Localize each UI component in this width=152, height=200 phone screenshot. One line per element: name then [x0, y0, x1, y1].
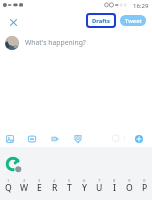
- button[interactable]: Add GIF: [24, 130, 40, 147]
- staticText: What's happening?: [25, 38, 86, 47]
- staticText: U: [96, 182, 103, 194]
- button[interactable]: Profile picture: [5, 36, 19, 50]
- button[interactable]: Add location: [70, 130, 86, 147]
- button[interactable]: 9: [122, 177, 137, 200]
- staticText: R: [52, 182, 58, 194]
- button[interactable]: Add poll: [47, 130, 63, 147]
- button[interactable]: Add photo: [2, 130, 18, 147]
- staticText: O: [126, 182, 133, 194]
- staticText: Drafts: [92, 17, 110, 25]
- button[interactable]: 8: [107, 177, 122, 200]
- button[interactable]: Close: [3, 12, 23, 32]
- button[interactable]: 0: [137, 177, 152, 200]
- staticText: 3: [38, 178, 41, 184]
- button[interactable]: 2: [16, 177, 32, 200]
- staticText: 8: [113, 178, 116, 184]
- staticText: 7: [98, 178, 101, 184]
- button[interactable]: Add another tweet: [135, 135, 143, 143]
- button[interactable]: 4: [47, 177, 62, 200]
- staticText: E: [37, 182, 42, 194]
- staticText: P: [142, 182, 148, 194]
- staticText: Y: [82, 182, 88, 194]
- button[interactable]: Tweet: [120, 15, 146, 26]
- button[interactable]: Grammarly keyboard: [5, 156, 21, 172]
- staticText: I: [113, 182, 117, 194]
- staticText: T: [67, 182, 72, 194]
- staticText: 16:29: [133, 2, 149, 10]
- staticText: Tweet: [125, 17, 142, 25]
- button[interactable]: 7: [92, 177, 107, 200]
- staticText: 6: [83, 178, 86, 184]
- button[interactable]: 6: [77, 177, 92, 200]
- button[interactable]: 5: [62, 177, 77, 200]
- button[interactable]: 3: [32, 177, 47, 200]
- staticText: Q: [5, 182, 12, 194]
- button[interactable]: Drafts: [86, 13, 116, 28]
- staticText: 9: [128, 178, 131, 184]
- staticText: 1: [7, 178, 10, 184]
- staticText: 4: [53, 178, 56, 184]
- staticText: 0: [143, 178, 146, 184]
- staticText: W: [20, 182, 29, 194]
- staticText: 5: [68, 178, 71, 184]
- button[interactable]: 1: [0, 177, 16, 200]
- staticText: 2: [23, 178, 26, 184]
